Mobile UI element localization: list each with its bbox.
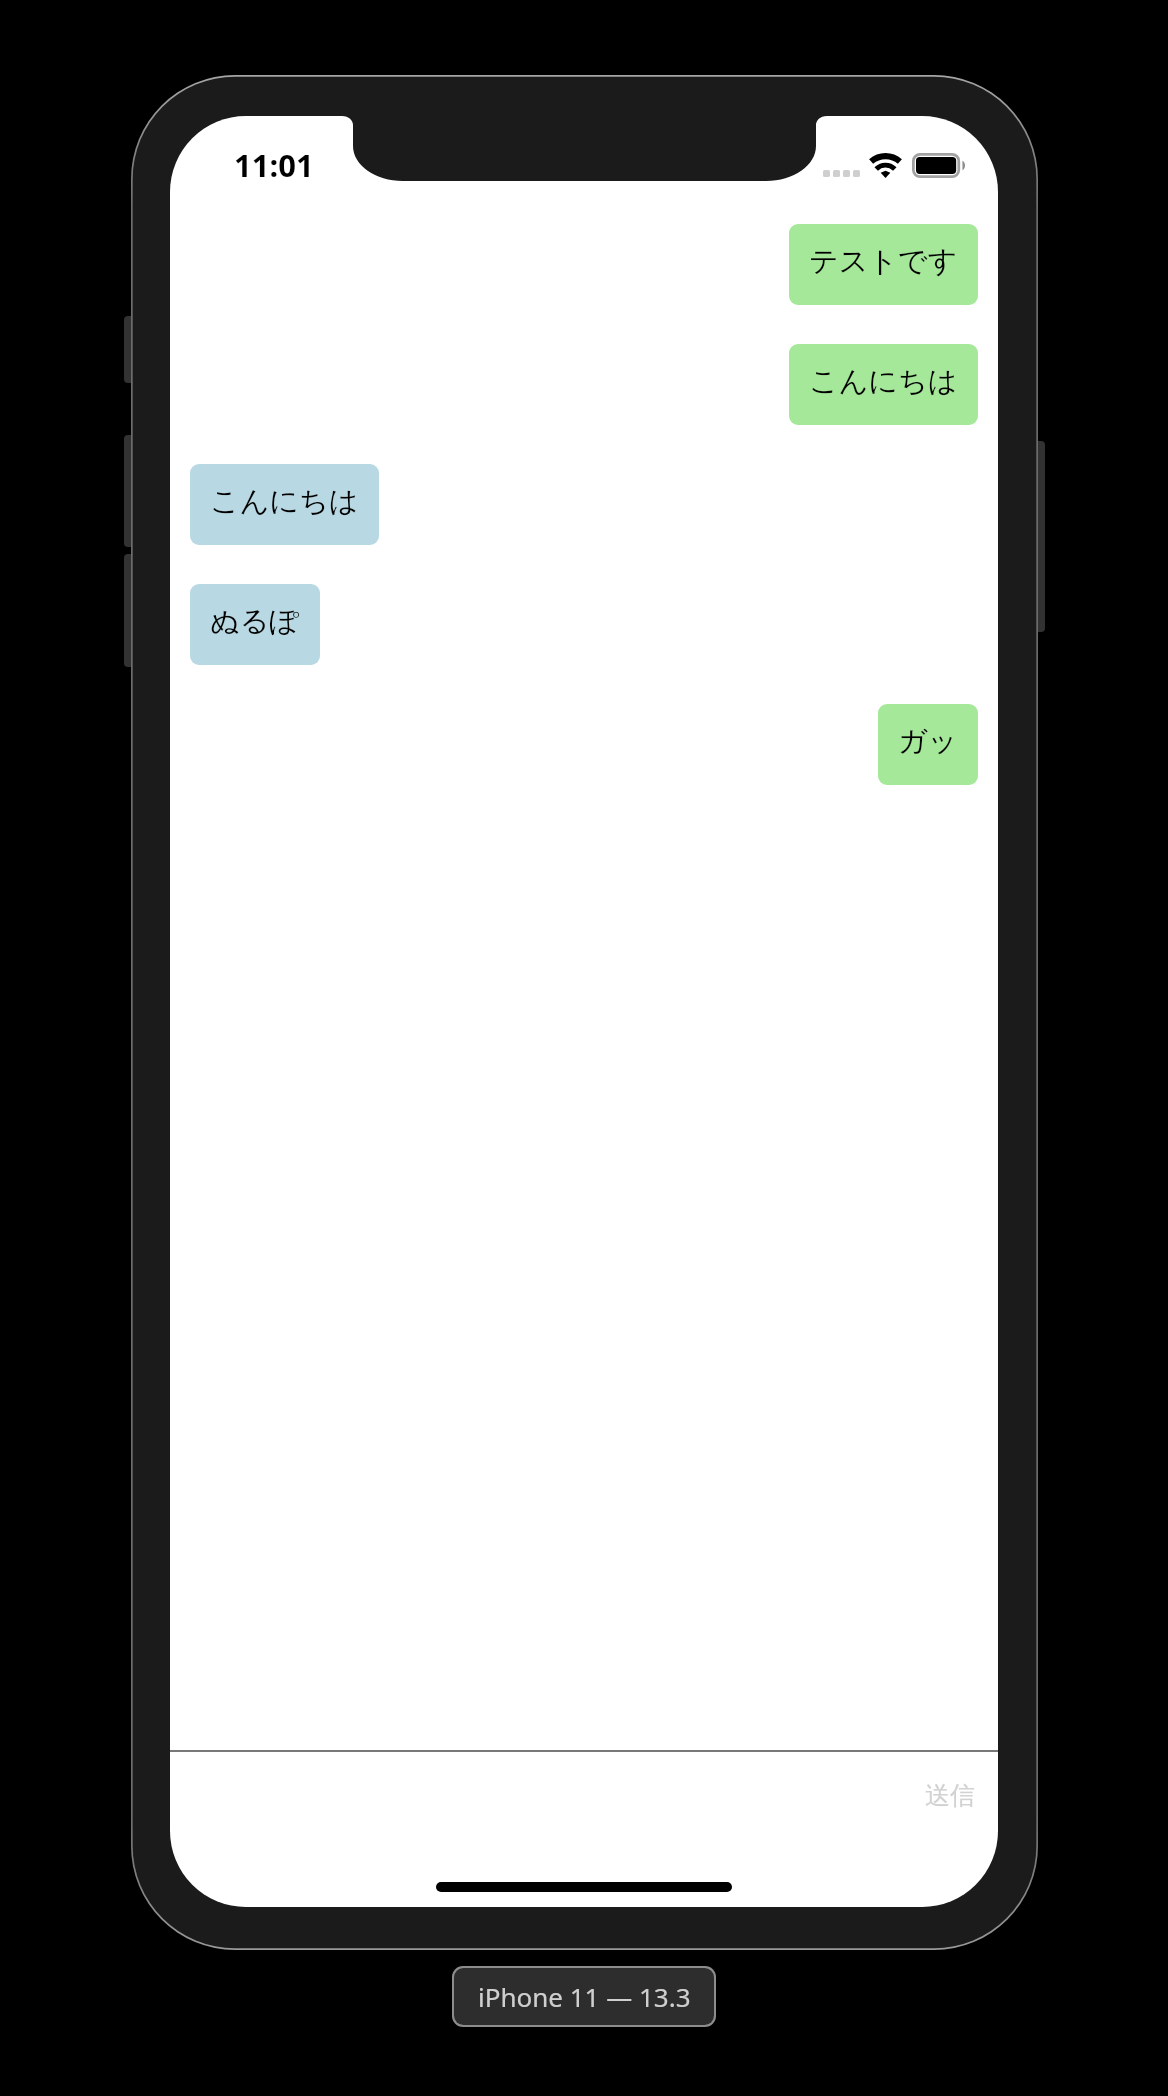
other: Battery	[912, 153, 965, 178]
button[interactable]: ガッ	[878, 704, 978, 785]
button[interactable]: 送信	[909, 1767, 991, 1823]
button[interactable]: iPhone 11 — 13.3	[454, 1968, 714, 2025]
staticText: 送信	[925, 1780, 975, 1811]
staticText: 11:01	[234, 144, 314, 186]
button[interactable]: こんにちは	[190, 464, 379, 545]
staticText: iPhone 11 — 13.3	[478, 1979, 691, 2014]
button[interactable]: Ring / silent switch	[124, 316, 138, 383]
staticText: こんにちは	[809, 363, 958, 400]
staticText: ガッ	[898, 723, 958, 760]
button[interactable]: Power	[1031, 441, 1045, 632]
button[interactable]: Volume up	[124, 435, 138, 547]
staticText: ぬるぽ	[210, 603, 300, 640]
button[interactable]: ぬるぽ	[190, 584, 320, 665]
staticText: テストです	[809, 243, 958, 280]
staticText: こんにちは	[210, 483, 359, 520]
other: Wi-Fi	[869, 153, 902, 178]
button[interactable]: こんにちは	[789, 344, 978, 425]
button[interactable]: Volume down	[124, 554, 138, 667]
button[interactable]: テストです	[789, 224, 978, 305]
